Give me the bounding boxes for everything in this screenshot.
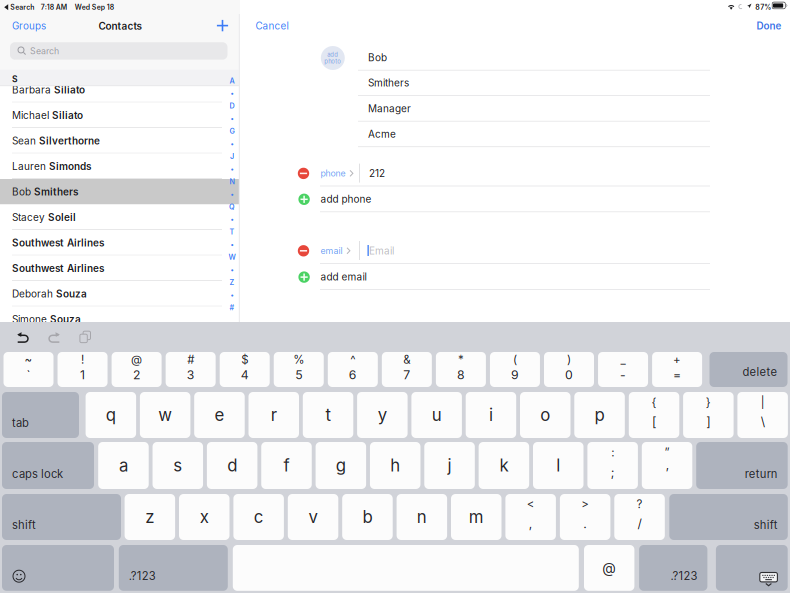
- button[interactable]: 7: [382, 352, 432, 387]
- button[interactable]: 0: [544, 352, 594, 387]
- button[interactable]: 4: [220, 352, 270, 387]
- staticText: 5: [295, 367, 302, 382]
- button[interactable]: t: [303, 392, 353, 438]
- button[interactable]: Index: [226, 74, 238, 313]
- button[interactable]: x: [179, 494, 229, 540]
- button[interactable]: Right shift: [669, 494, 788, 540]
- button[interactable]: add phone: [240, 186, 790, 212]
- button[interactable]: Cancel: [251, 14, 293, 38]
- button[interactable]: Remove phone: [293, 163, 313, 183]
- staticText: D: [229, 102, 234, 110]
- button[interactable]: Bob: [0, 179, 240, 204]
- button[interactable]: phone: [320, 161, 358, 186]
- button[interactable]: k: [479, 442, 529, 489]
- button[interactable]: s: [153, 442, 203, 489]
- button[interactable]: 1: [57, 352, 107, 387]
- button[interactable]: Michael: [0, 102, 240, 128]
- button[interactable]: 3: [166, 352, 216, 387]
- staticText: @: [602, 559, 616, 576]
- button[interactable]: delete: [709, 352, 787, 387]
- button[interactable]: Done: [752, 14, 786, 38]
- staticText: •: [230, 291, 233, 299]
- button[interactable]: Left shift: [2, 494, 121, 540]
- button[interactable]: .?123: [639, 545, 707, 591]
- button[interactable]: Acme: [240, 121, 790, 147]
- button[interactable]: [0, 255, 240, 281]
- button[interactable]: Barbara: [0, 77, 240, 102]
- button[interactable]: y: [357, 392, 408, 438]
- button[interactable]: Bob: [240, 45, 790, 70]
- button[interactable]: .: [560, 494, 610, 540]
- button[interactable]: Simone: [0, 306, 240, 332]
- button[interactable]: e: [194, 392, 245, 438]
- button[interactable]: 6: [328, 352, 378, 387]
- button[interactable]: q: [86, 392, 136, 438]
- button[interactable]: [0, 230, 240, 255]
- button[interactable]: -: [598, 352, 648, 387]
- button[interactable]: ’: [642, 442, 692, 489]
- button[interactable]: Search: [10, 42, 227, 60]
- button[interactable]: l: [533, 442, 583, 489]
- staticText: !: [81, 353, 84, 367]
- staticText: &: [403, 353, 410, 367]
- button[interactable]: Copy: [75, 327, 95, 347]
- button[interactable]: \: [737, 392, 788, 438]
- button[interactable]: o: [520, 392, 570, 438]
- staticText: Southwest Airlines: [12, 262, 104, 274]
- button[interactable]: Groups: [6, 14, 52, 38]
- button[interactable]: c: [233, 494, 284, 540]
- button[interactable]: Undo: [12, 327, 34, 347]
- button[interactable]: Add photo: [320, 46, 345, 70]
- button[interactable]: a: [98, 442, 149, 489]
- button[interactable]: r: [248, 392, 299, 438]
- button[interactable]: g: [316, 442, 366, 489]
- button[interactable]: Manager: [240, 96, 790, 121]
- button[interactable]: 9: [490, 352, 540, 387]
- button[interactable]: `: [3, 352, 53, 387]
- button[interactable]: ;: [587, 442, 638, 489]
- staticText: Michael: [12, 109, 52, 121]
- button[interactable]: Remove email: [293, 241, 313, 261]
- button[interactable]: tab: [2, 392, 79, 438]
- button[interactable]: Smithers: [240, 70, 790, 96]
- button[interactable]: 5: [274, 352, 324, 387]
- button[interactable]: Deborah: [0, 281, 240, 306]
- button[interactable]: Redo: [43, 327, 65, 347]
- button[interactable]: p: [574, 392, 625, 438]
- button[interactable]: f: [261, 442, 312, 489]
- button[interactable]: Lauren: [0, 153, 240, 179]
- button[interactable]: d: [207, 442, 257, 489]
- button[interactable]: Stacey: [0, 204, 240, 230]
- button[interactable]: 2: [112, 352, 162, 387]
- button[interactable]: n: [397, 494, 447, 540]
- button[interactable]: h: [370, 442, 420, 489]
- button[interactable]: email: [320, 238, 358, 263]
- button[interactable]: /: [614, 494, 665, 540]
- button[interactable]: Emoji: [2, 545, 114, 591]
- button[interactable]: Hide keyboard: [716, 545, 788, 591]
- button[interactable]: v: [288, 494, 338, 540]
- button[interactable]: m: [451, 494, 501, 540]
- button[interactable]: b: [342, 494, 393, 540]
- button[interactable]: .?123: [119, 545, 228, 591]
- button[interactable]: Sean: [0, 128, 240, 153]
- staticText: y: [378, 405, 387, 425]
- button[interactable]: z: [125, 494, 175, 540]
- button[interactable]: ]: [683, 392, 734, 438]
- button[interactable]: return: [696, 442, 788, 489]
- button[interactable]: =: [652, 352, 702, 387]
- button[interactable]: ,: [505, 494, 556, 540]
- staticText: k: [499, 455, 508, 476]
- button[interactable]: u: [411, 392, 462, 438]
- button[interactable]: add email: [240, 264, 790, 290]
- button[interactable]: w: [140, 392, 190, 438]
- button[interactable]: At sign: [584, 545, 634, 591]
- button[interactable]: j: [424, 442, 475, 489]
- button[interactable]: caps lock: [2, 442, 94, 489]
- button[interactable]: 8: [436, 352, 486, 387]
- staticText: .: [583, 516, 587, 531]
- button[interactable]: Add contact: [210, 14, 234, 38]
- button[interactable]: i: [466, 392, 516, 438]
- button[interactable]: [: [629, 392, 679, 438]
